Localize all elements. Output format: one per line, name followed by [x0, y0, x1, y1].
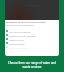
staticText: Manage your account online today — [6, 20, 46, 23]
staticText: WATER SERVICES — [24, 4, 40, 7]
staticText: Choose from our range of water and waste… — [5, 61, 59, 69]
staticText: Quick and easy self service — [6, 24, 34, 27]
button[interactable]: Water saving tips — [6, 45, 58, 49]
button[interactable]: Report a leak — [6, 37, 58, 41]
staticText: Water saving tips — [9, 46, 29, 49]
staticText: Moving home — [9, 42, 25, 45]
staticText: Pay your bill online — [9, 30, 31, 33]
button[interactable]: Pay your bill online — [6, 29, 58, 33]
button[interactable]: Moving home — [6, 41, 58, 45]
staticText: Report a leak — [9, 38, 24, 41]
staticText: Submit a meter reading — [9, 34, 36, 37]
button[interactable]: Submit a meter reading — [6, 33, 58, 37]
